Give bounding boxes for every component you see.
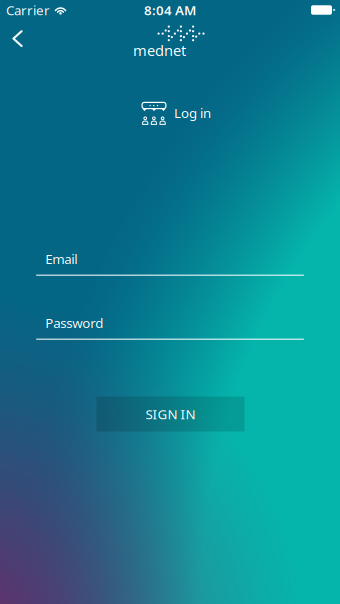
button[interactable]: SIGN IN — [96, 396, 244, 431]
button[interactable]: Log in — [136, 98, 216, 129]
staticText: 8:04 AM — [144, 1, 196, 19]
staticText: mednet — [133, 40, 186, 60]
staticText: Password — [45, 314, 103, 332]
staticText: SIGN IN — [145, 405, 195, 423]
staticText: Carrier — [6, 1, 50, 19]
staticText: Email — [45, 250, 77, 268]
staticText: Log in — [174, 104, 211, 122]
button[interactable]: Back — [0, 22, 37, 57]
